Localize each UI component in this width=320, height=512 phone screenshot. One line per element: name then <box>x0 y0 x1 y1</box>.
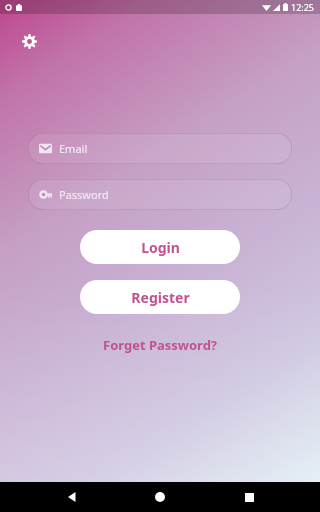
staticText: 12:25 <box>291 1 315 13</box>
button[interactable]: Recents <box>232 482 266 512</box>
button[interactable]: Password <box>28 179 292 210</box>
button[interactable]: Register <box>80 280 240 314</box>
button[interactable]: Settings <box>15 27 43 55</box>
button[interactable]: Email <box>28 133 292 164</box>
button[interactable]: Home <box>143 482 177 512</box>
staticText: Forget Password? <box>103 336 218 354</box>
staticText: Password <box>59 187 109 202</box>
button[interactable]: Login <box>80 230 240 264</box>
button[interactable]: Forget Password? <box>95 331 226 359</box>
staticText: Login <box>141 238 180 257</box>
button[interactable]: Back <box>55 482 89 512</box>
staticText: Email <box>59 141 88 156</box>
staticText: Register <box>131 288 190 307</box>
